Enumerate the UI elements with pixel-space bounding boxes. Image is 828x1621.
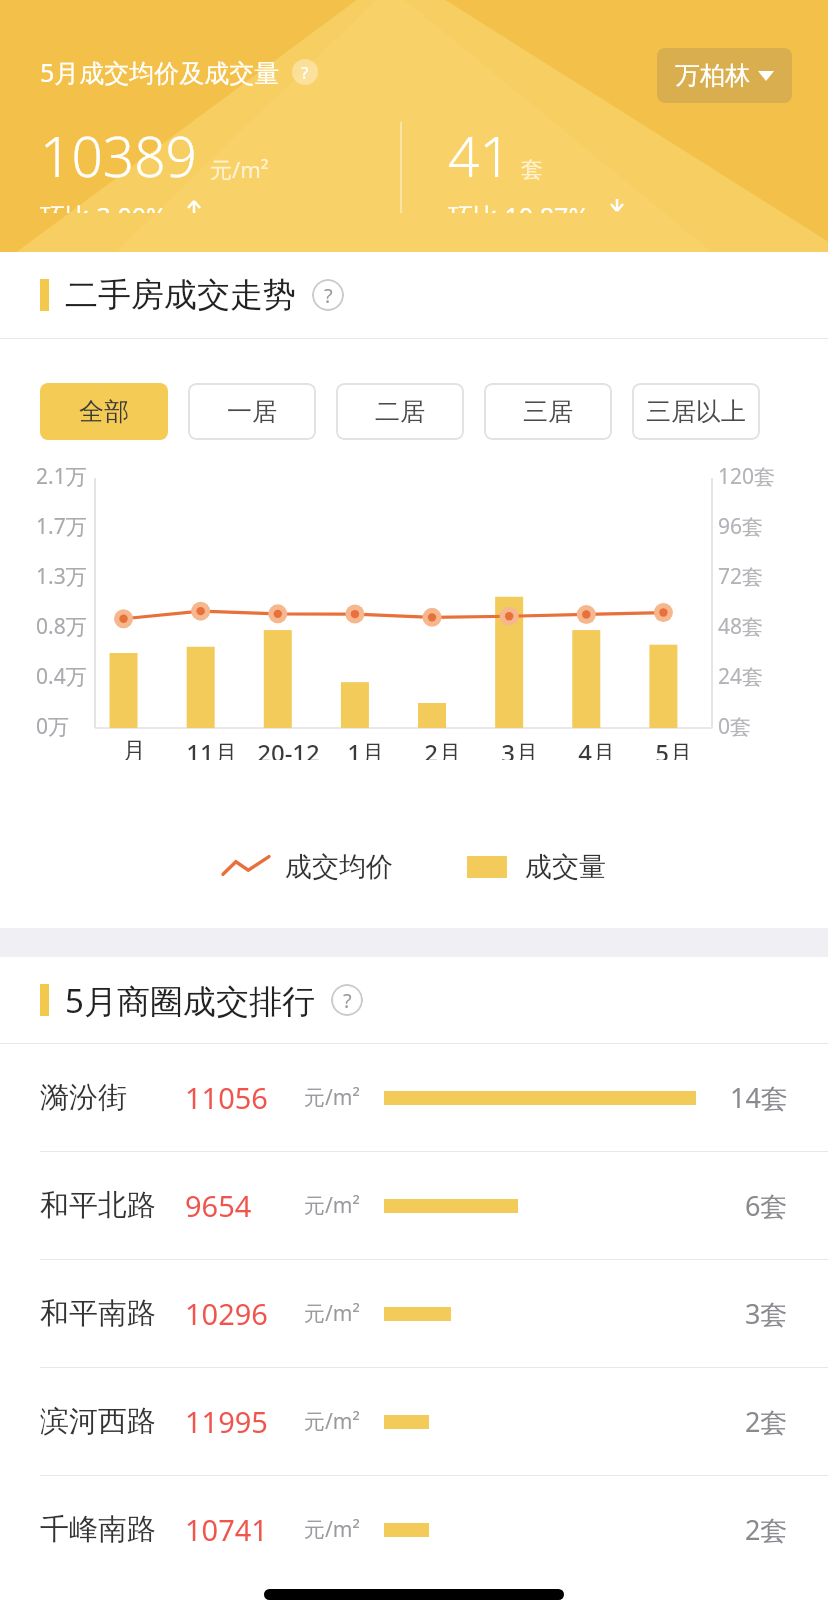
staticText: 9654: [185, 1186, 252, 1225]
staticText: 和平北路: [40, 1187, 156, 1224]
staticText: 滨河西路: [40, 1403, 156, 1440]
button[interactable]: 三居以上: [632, 383, 760, 440]
staticText: 1.7万: [36, 512, 87, 541]
staticText: 14套: [730, 1079, 788, 1116]
button[interactable]: 和平北路: [0, 1152, 828, 1259]
staticText: 72套: [718, 562, 764, 591]
staticText: 0.8万: [36, 612, 87, 641]
staticText: 元/m²: [304, 1407, 360, 1436]
staticText: 96套: [718, 512, 764, 541]
staticText: 元/m²: [304, 1191, 360, 1220]
staticText: 全部: [79, 396, 129, 427]
staticText: 0.4万: [36, 662, 87, 691]
button[interactable]: 说明: [331, 984, 363, 1016]
staticText: 环比 3.00%: [40, 199, 167, 213]
staticText: 一居: [227, 396, 277, 427]
staticText: 1.3万: [36, 562, 87, 591]
staticText: 5月: [655, 736, 693, 760]
staticText: 千峰南路: [40, 1511, 156, 1548]
staticText: 2套: [745, 1511, 788, 1548]
staticText: 11月: [186, 736, 238, 760]
staticText: 11056: [185, 1078, 268, 1117]
button[interactable]: 说明: [292, 59, 318, 85]
staticText: 2月: [424, 736, 462, 760]
staticText: 10389: [40, 118, 198, 193]
staticText: 5月商圈成交排行: [65, 978, 315, 1023]
staticText: 10741: [185, 1510, 268, 1549]
staticText: 和平南路: [40, 1295, 156, 1332]
staticText: 24套: [718, 662, 764, 691]
button[interactable]: 说明: [312, 279, 344, 311]
staticText: 二居: [375, 396, 425, 427]
staticText: 0万: [36, 712, 70, 741]
button[interactable]: 漪汾街: [0, 1044, 828, 1151]
button[interactable]: 三居: [484, 383, 612, 440]
staticText: 41: [448, 118, 511, 193]
staticText: 元/m²: [304, 1515, 360, 1544]
staticText: 5月成交均价及成交量: [40, 55, 280, 89]
staticText: 元/m²: [210, 154, 269, 184]
staticText: 三居: [523, 396, 573, 427]
button[interactable]: 二居: [336, 383, 464, 440]
button[interactable]: 和平南路: [0, 1260, 828, 1367]
button[interactable]: 全部: [40, 383, 168, 440]
staticText: 元/m²: [304, 1299, 360, 1328]
staticText: 成交均价: [285, 850, 393, 884]
staticText: 120套: [718, 462, 776, 491]
staticText: 环比 10.87%: [448, 199, 590, 213]
staticText: 48套: [718, 612, 764, 641]
staticText: ?: [343, 987, 352, 1014]
button[interactable]: 滨河西路: [0, 1368, 828, 1475]
staticText: 4月: [578, 736, 616, 760]
staticText: 1月: [347, 736, 385, 760]
staticText: 套: [521, 156, 543, 184]
staticText: 0套: [718, 712, 752, 741]
staticText: 2.1万: [36, 462, 87, 491]
staticText: 成交量: [525, 850, 606, 884]
staticText: 万柏林: [675, 60, 750, 91]
staticText: 三居以上: [646, 396, 746, 427]
button[interactable]: 万柏林: [657, 48, 792, 103]
staticText: 10296: [185, 1294, 268, 1333]
button[interactable]: 一居: [188, 383, 316, 440]
staticText: 20-12 月: [257, 736, 320, 760]
staticText: 元/m²: [304, 1083, 360, 1112]
staticText: 3套: [745, 1295, 788, 1332]
staticText: 漪汾街: [40, 1079, 127, 1116]
staticText: 二手房成交走势: [65, 274, 296, 316]
staticText: ?: [324, 282, 333, 309]
staticText: 3月: [501, 736, 539, 760]
staticText: 6套: [745, 1187, 788, 1224]
staticText: 11995: [185, 1402, 268, 1441]
staticText: 月: [122, 736, 146, 760]
staticText: 2套: [745, 1403, 788, 1440]
staticText: ?: [301, 61, 309, 84]
button[interactable]: 千峰南路: [0, 1476, 828, 1583]
